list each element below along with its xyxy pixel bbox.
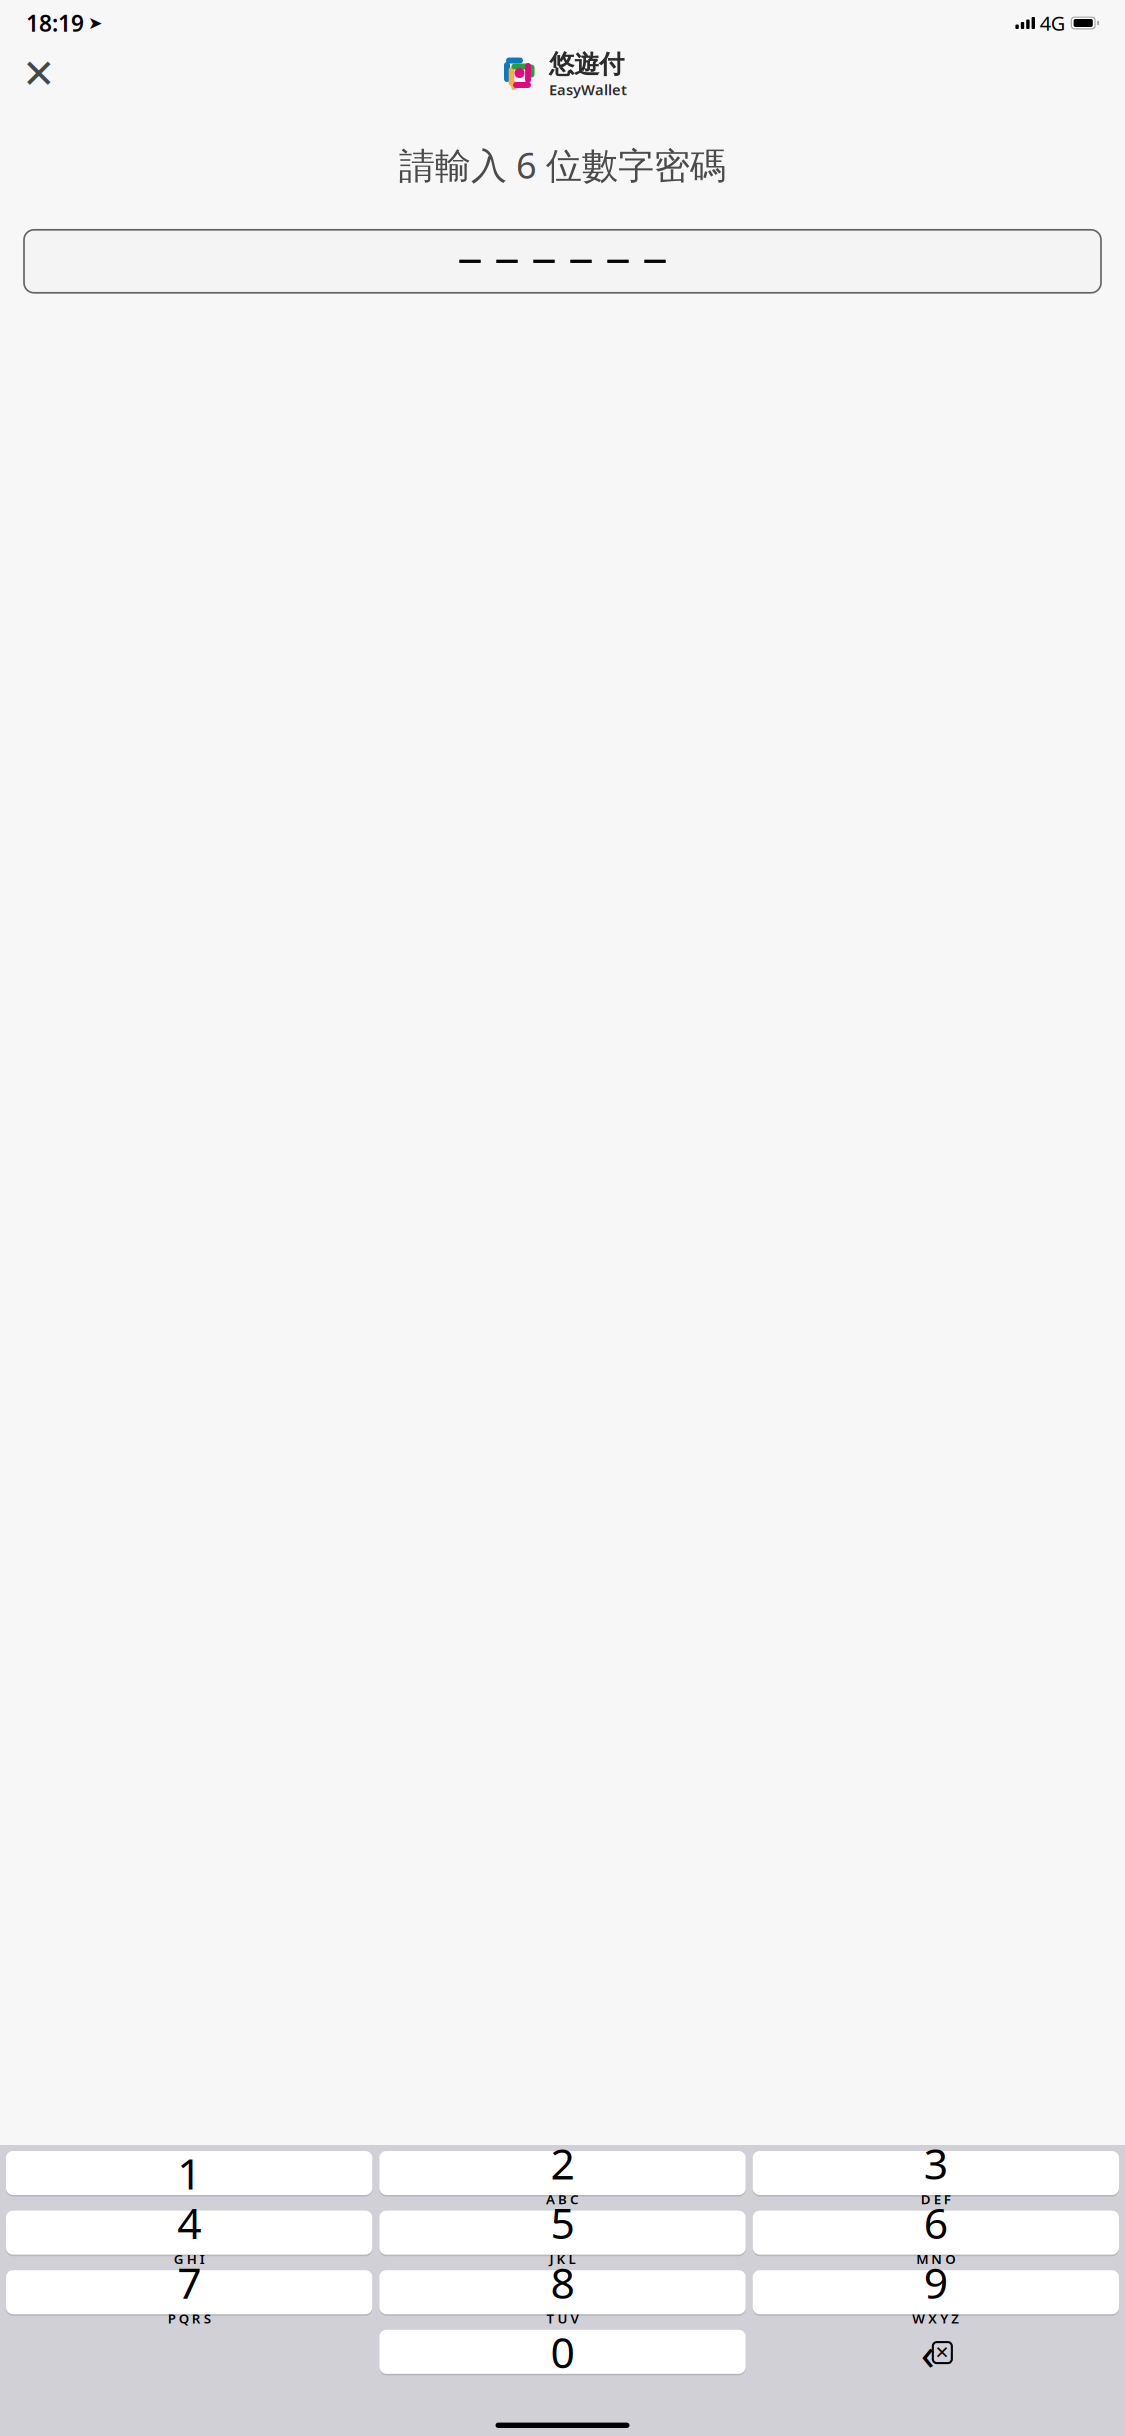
staticText: 7 xyxy=(177,2254,201,2310)
button[interactable]: 8 xyxy=(379,2270,746,2316)
staticText: EasyWallet xyxy=(549,80,627,99)
button[interactable]: 2 xyxy=(379,2151,746,2197)
button[interactable]: 9 xyxy=(753,2270,1119,2316)
button[interactable]: 1 xyxy=(6,2151,372,2197)
staticText: 0 xyxy=(550,2323,574,2380)
staticText: 5 xyxy=(550,2194,574,2251)
staticText: 8 xyxy=(550,2254,574,2310)
staticText: 1 xyxy=(177,2145,201,2201)
button[interactable]: 3 xyxy=(753,2151,1119,2197)
staticText: W X Y Z xyxy=(912,2309,959,2327)
staticText: 請輸入 6 位數字密碼 xyxy=(399,141,726,189)
staticText: T U V xyxy=(546,2309,578,2327)
button[interactable]: 5 xyxy=(379,2211,746,2256)
button[interactable]: 0 xyxy=(379,2330,746,2375)
button[interactable]: Delete xyxy=(753,2330,1119,2375)
staticText: ✕ xyxy=(22,51,56,97)
staticText: 9 xyxy=(924,2254,948,2310)
button[interactable]: 7 xyxy=(6,2270,372,2316)
staticText: 3 xyxy=(924,2135,948,2191)
staticText: ‹ xyxy=(921,2322,935,2383)
button[interactable]: 4 xyxy=(6,2211,372,2256)
staticText: A B C xyxy=(546,2190,579,2208)
staticText: 6 xyxy=(924,2194,948,2251)
button[interactable]: Close xyxy=(22,57,56,91)
staticText: D E F xyxy=(921,2190,951,2208)
staticText: ➤ xyxy=(88,13,103,33)
staticText: 4G xyxy=(1040,10,1066,36)
staticText: ✕ xyxy=(935,2343,950,2362)
staticText: 悠遊付 xyxy=(549,49,624,80)
staticText: J K L xyxy=(549,2250,575,2268)
staticText: 18:19 xyxy=(26,8,84,38)
staticText: 2 xyxy=(550,2135,574,2191)
button[interactable]: 6 xyxy=(753,2211,1119,2256)
staticText: M N O xyxy=(916,2250,955,2268)
staticText: 4 xyxy=(177,2194,201,2251)
staticText: P Q R S xyxy=(168,2309,211,2327)
staticText: G H I xyxy=(174,2250,205,2268)
